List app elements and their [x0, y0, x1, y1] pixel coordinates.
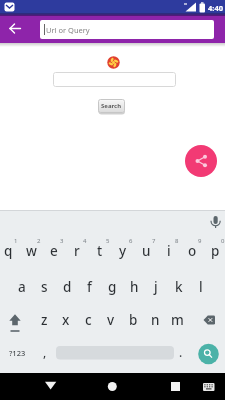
button[interactable]: l: [190, 273, 212, 301]
button[interactable]: k: [168, 273, 190, 301]
button[interactable]: Search: [98, 99, 125, 113]
staticText: 0: [221, 237, 225, 245]
button[interactable]: [2, 16, 29, 43]
button[interactable]: [197, 373, 223, 400]
staticText: 4: [83, 237, 87, 245]
staticText: h: [130, 278, 139, 296]
staticText: 5: [106, 237, 110, 245]
staticText: Search: [101, 102, 122, 110]
staticText: t: [97, 242, 103, 260]
staticText: 8: [175, 237, 179, 245]
button[interactable]: p: [204, 237, 225, 265]
staticText: r: [74, 242, 80, 260]
staticText: m: [171, 311, 184, 329]
staticText: z: [41, 311, 48, 329]
button[interactable]: m: [166, 306, 188, 334]
button[interactable]: [53, 72, 176, 87]
button[interactable]: n: [144, 306, 166, 334]
button[interactable]: c: [77, 306, 99, 334]
staticText: Url or Query: [46, 25, 90, 35]
staticText: c: [85, 311, 92, 329]
button[interactable]: g: [101, 273, 123, 301]
button[interactable]: d: [56, 273, 78, 301]
button[interactable]: r: [66, 237, 88, 265]
staticText: w: [26, 242, 37, 260]
staticText: ,: [43, 344, 47, 360]
staticText: o: [188, 242, 197, 260]
staticText: u: [142, 242, 151, 260]
staticText: 4:40: [208, 3, 223, 13]
staticText: 9: [198, 237, 202, 245]
staticText: n: [151, 311, 160, 329]
staticText: v: [107, 311, 115, 329]
button[interactable]: f: [78, 273, 100, 301]
button[interactable]: x: [55, 306, 77, 334]
staticText: i: [167, 242, 171, 260]
button[interactable]: j: [145, 273, 167, 301]
staticText: k: [175, 278, 183, 296]
staticText: g: [108, 278, 117, 296]
button[interactable]: [185, 145, 217, 177]
button[interactable]: [99, 373, 125, 400]
button[interactable]: w: [20, 237, 42, 265]
staticText: j: [154, 278, 158, 296]
button[interactable]: ,: [34, 338, 56, 366]
button[interactable]: v: [100, 306, 122, 334]
button[interactable]: e: [43, 237, 65, 265]
button[interactable]: [162, 373, 188, 400]
staticText: f: [87, 278, 92, 296]
button[interactable]: h: [123, 273, 145, 301]
button[interactable]: q: [0, 237, 19, 265]
staticText: p: [211, 242, 220, 260]
button[interactable]: z: [33, 306, 55, 334]
button[interactable]: o: [181, 237, 203, 265]
staticText: a: [18, 278, 26, 296]
staticText: 2: [37, 237, 41, 245]
staticText: x: [62, 311, 70, 329]
staticText: e: [50, 242, 58, 260]
staticText: l: [199, 278, 203, 296]
staticText: 6: [129, 237, 133, 245]
button[interactable]: t: [89, 237, 111, 265]
staticText: 3: [60, 237, 64, 245]
button[interactable]: b: [122, 306, 144, 334]
staticText: 7: [152, 237, 156, 245]
staticText: s: [41, 278, 48, 296]
button[interactable]: s: [33, 273, 55, 301]
staticText: b: [129, 311, 138, 329]
staticText: ?123: [9, 348, 26, 358]
button[interactable]: i: [158, 237, 180, 265]
button[interactable]: .: [170, 338, 192, 366]
staticText: .: [179, 344, 183, 360]
button[interactable]: y: [112, 237, 134, 265]
staticText: y: [119, 242, 127, 260]
staticText: 1: [14, 237, 18, 245]
button[interactable]: a: [11, 273, 33, 301]
button[interactable]: [38, 373, 64, 400]
button[interactable]: Url or Query: [40, 20, 214, 39]
staticText: q: [4, 242, 13, 260]
staticText: d: [63, 278, 72, 296]
button[interactable]: u: [135, 237, 157, 265]
